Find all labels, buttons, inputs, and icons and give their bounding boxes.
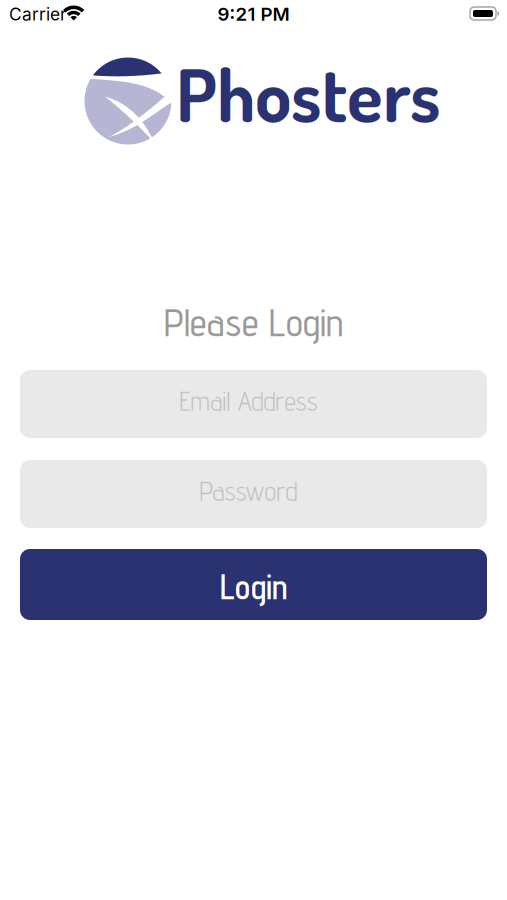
button[interactable]: Login: [20, 549, 487, 620]
staticText: Password: [199, 475, 297, 507]
secureTextField[interactable]: Password: [20, 477, 487, 511]
staticText: Please Login: [164, 299, 343, 345]
staticText: Carrier: [9, 4, 67, 24]
staticText: Phosters: [176, 47, 441, 140]
staticText: Email Address: [179, 385, 317, 417]
textField[interactable]: Email Address: [20, 387, 487, 421]
staticText: 9:21 PM: [217, 3, 289, 25]
staticText: Login: [220, 566, 287, 607]
